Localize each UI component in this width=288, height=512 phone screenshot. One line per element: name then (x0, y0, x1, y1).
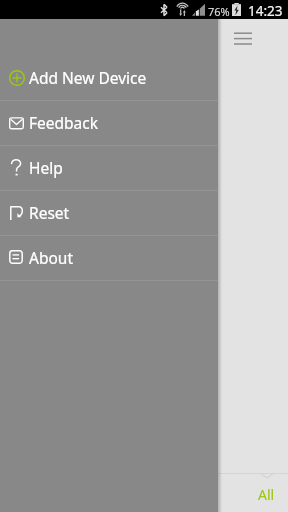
staticText: Reset (29, 202, 70, 223)
staticText: Add New Device (29, 67, 147, 88)
button[interactable]: Help (0, 146, 218, 190)
button[interactable]: Reset (0, 191, 218, 235)
staticText: About (29, 247, 73, 268)
button[interactable]: All (244, 473, 288, 512)
button[interactable]: Add New Device (0, 56, 218, 100)
button[interactable]: Feedback (0, 101, 218, 145)
staticText: 14:23 (248, 2, 283, 20)
button[interactable]: About (0, 236, 218, 280)
staticText: All (258, 485, 275, 504)
staticText: Help (29, 157, 63, 178)
staticText: 76% (208, 4, 230, 19)
staticText: Feedback (29, 112, 99, 133)
button[interactable]: Open navigation drawer (226, 24, 259, 53)
